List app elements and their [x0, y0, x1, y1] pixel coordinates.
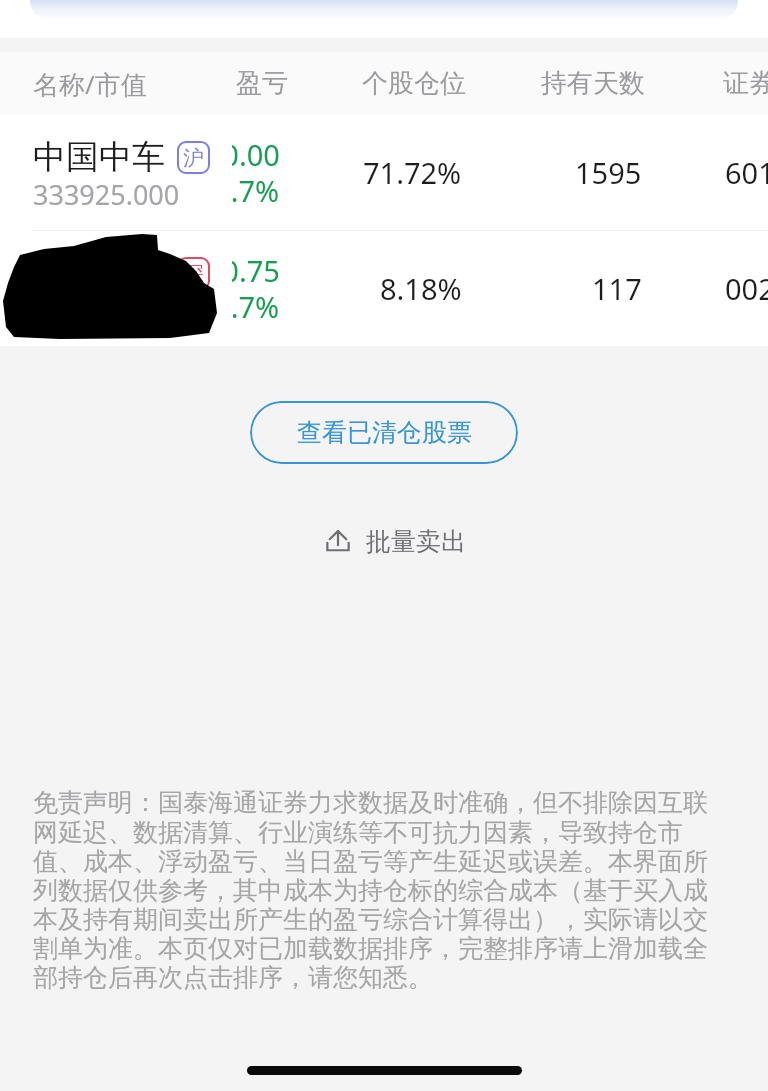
staticText: +12.7% [232, 287, 280, 326]
staticText: 117 [592, 269, 642, 308]
staticText: 盈亏 [236, 67, 288, 100]
staticText: 证券 [723, 67, 768, 100]
staticText: 中国中车 [33, 136, 165, 178]
button[interactable]: 查看已清仓股票 [250, 401, 518, 464]
staticText: 持有天数 [541, 67, 645, 100]
staticText: +30.7% [232, 171, 280, 210]
staticText: 查看已清仓股票 [297, 417, 472, 448]
staticText: 1595 [575, 153, 642, 192]
staticText: 深 [183, 261, 204, 287]
button[interactable]: 批量卖出 [311, 516, 480, 567]
staticText: +3040.00 [232, 135, 280, 174]
staticText: 沪 [183, 145, 204, 171]
staticText: 个股仓位 [362, 67, 466, 100]
staticText: 8.18% [380, 269, 462, 308]
staticText: 71.72% [363, 153, 462, 192]
staticText: 批量卖出 [366, 526, 466, 557]
staticText: 002415 [725, 269, 768, 308]
staticText: 601766 [725, 153, 768, 192]
staticText: 名称/市值 [33, 66, 147, 102]
staticText: 333925.000 [33, 176, 180, 213]
staticText: 免责声明：国泰海通证券力求数据及时准确，但不排除因互联 网延迟、数据清算、行业演… [33, 787, 708, 993]
button[interactable]: 恒生电子 [0, 231, 768, 346]
staticText: +1280.75 [232, 251, 280, 290]
button[interactable]: 中国中车 [0, 115, 768, 230]
